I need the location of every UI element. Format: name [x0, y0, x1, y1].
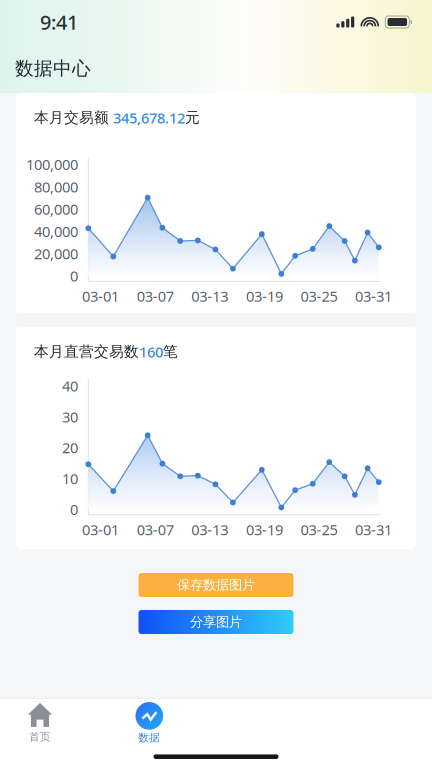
staticText: 本月交易额	[34, 109, 113, 127]
staticText: 9:41	[40, 9, 78, 35]
staticText: 60,000	[34, 199, 78, 219]
staticText: 首页	[29, 730, 51, 743]
staticText: 03-13	[191, 520, 228, 539]
staticText: 03-31	[355, 520, 392, 539]
staticText: 分享图片	[190, 614, 242, 630]
staticText: 03-01	[82, 520, 119, 539]
staticText: 0	[70, 500, 78, 519]
staticText: 160	[139, 342, 163, 361]
staticText: 03-07	[137, 520, 174, 539]
staticText: 元	[185, 109, 200, 127]
staticText: 03-07	[137, 286, 174, 306]
staticText: 保存数据图片	[177, 577, 255, 593]
staticText: 20	[62, 438, 78, 457]
staticText: 30	[62, 407, 78, 426]
button[interactable]: 数据	[119, 702, 179, 744]
button[interactable]: 首页	[10, 702, 70, 744]
button[interactable]: 保存数据图片	[138, 573, 293, 597]
staticText: 数据	[138, 731, 160, 744]
staticText: 本月直营交易数	[34, 343, 139, 361]
staticText: 数据中心	[15, 57, 91, 80]
staticText: 40,000	[34, 222, 78, 241]
button[interactable]: 分享图片	[138, 610, 293, 634]
staticText: 03-19	[246, 286, 283, 306]
staticText: 03-25	[300, 520, 337, 539]
staticText: 100,000	[26, 155, 78, 174]
staticText: 03-31	[355, 286, 392, 306]
staticText: 10	[62, 469, 78, 488]
staticText: 20,000	[34, 244, 78, 263]
staticText: 03-25	[300, 286, 337, 306]
staticText: 0	[70, 266, 78, 286]
staticText: 40	[62, 376, 78, 396]
staticText: 03-13	[191, 286, 228, 306]
staticText: 80,000	[34, 177, 78, 196]
staticText: 345,678.12	[113, 108, 185, 127]
staticText: 03-01	[82, 286, 119, 306]
staticText: 笔	[163, 343, 178, 361]
staticText: 03-19	[246, 520, 283, 539]
